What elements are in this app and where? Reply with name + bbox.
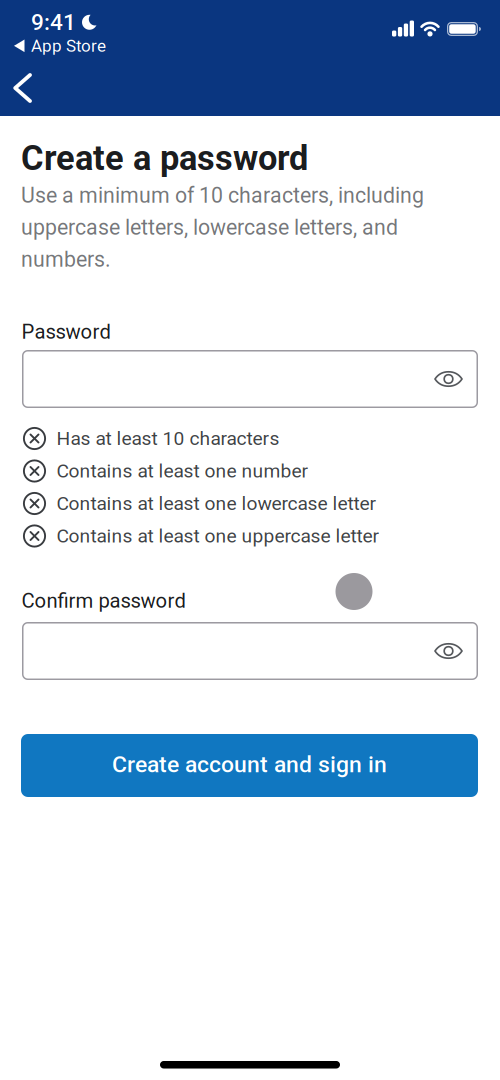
staticText: App Store — [31, 36, 106, 56]
button[interactable]: Back — [13, 73, 33, 103]
button[interactable]: Create account and sign in — [21, 734, 478, 797]
staticText: Create account and sign in — [112, 751, 387, 778]
button[interactable]: Confirm password text field — [22, 622, 478, 680]
button[interactable]: Password text field — [22, 350, 478, 408]
staticText: Confirm password — [21, 589, 185, 613]
staticText: uppercase letters, lowercase letters, an… — [21, 215, 398, 240]
button[interactable]: Show password — [424, 361, 473, 397]
staticText: Password — [21, 320, 110, 344]
staticText: Create a password — [21, 138, 308, 178]
staticText: Use a minimum of 10 characters, includin… — [21, 183, 424, 208]
staticText: Has at least 10 characters — [56, 427, 279, 450]
button[interactable]: Show password — [424, 633, 473, 669]
staticText: Contains at least one number — [56, 460, 308, 482]
staticText: Contains at least one lowercase letter — [56, 492, 376, 515]
staticText: numbers. — [21, 247, 111, 272]
button[interactable]: Back to App Store — [14, 36, 106, 56]
staticText: Contains at least one uppercase letter — [56, 525, 379, 547]
staticText: 9:41 — [31, 9, 76, 36]
